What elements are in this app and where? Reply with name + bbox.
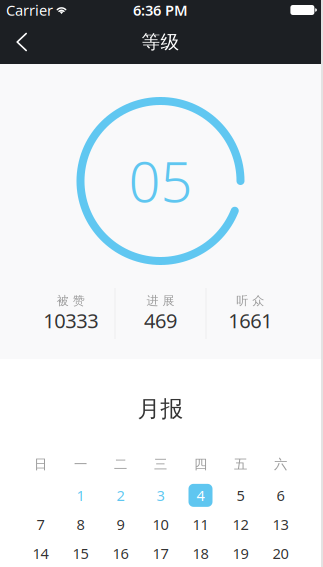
staticText: 9 — [116, 515, 124, 534]
staticText: 一 — [74, 456, 87, 473]
button[interactable]: 10 — [140, 510, 180, 539]
staticText: 11 — [192, 515, 208, 534]
button[interactable]: 20 — [260, 539, 300, 567]
staticText: 12 — [232, 515, 248, 534]
button[interactable]: 14 — [20, 539, 60, 567]
staticText: 五 — [234, 456, 247, 473]
button[interactable]: 7 — [20, 510, 60, 539]
button[interactable]: 4 — [180, 481, 220, 510]
staticText: 二 — [114, 456, 127, 473]
staticText: 月报 — [137, 395, 183, 423]
button[interactable]: 5 — [220, 481, 260, 510]
staticText: 被 赞 — [57, 293, 85, 308]
staticText: 10 — [152, 515, 168, 534]
staticText: 听 众 — [236, 293, 264, 308]
staticText: 18 — [192, 544, 208, 563]
staticText: 16 — [112, 544, 128, 563]
staticText: 6 — [276, 486, 284, 505]
button[interactable]: 8 — [60, 510, 100, 539]
staticText: 20 — [272, 544, 288, 563]
staticText: 3 — [156, 486, 164, 505]
staticText: 日 — [34, 456, 47, 473]
staticText: 六 — [274, 456, 287, 473]
staticText: 10333 — [43, 307, 98, 334]
staticText: 05 — [128, 143, 192, 218]
staticText: 6:36 PM — [133, 0, 188, 20]
button[interactable]: 9 — [100, 510, 140, 539]
button[interactable]: 3 — [140, 481, 180, 510]
staticText: 5 — [236, 486, 244, 505]
button[interactable]: 1 — [60, 481, 100, 510]
staticText: 1 — [76, 486, 84, 505]
staticText: 等级 — [141, 30, 179, 53]
staticText: 7 — [36, 515, 44, 534]
button[interactable]: 11 — [180, 510, 220, 539]
button[interactable]: 15 — [60, 539, 100, 567]
button[interactable]: 13 — [260, 510, 300, 539]
button[interactable]: 6 — [260, 481, 300, 510]
staticText: 17 — [152, 544, 168, 563]
button[interactable]: 18 — [180, 539, 220, 567]
button[interactable]: 19 — [220, 539, 260, 567]
button[interactable]: 2 — [100, 481, 140, 510]
staticText: 1661 — [228, 307, 272, 334]
staticText: 2 — [116, 486, 124, 505]
staticText: 四 — [194, 456, 207, 473]
staticText: 14 — [32, 544, 48, 563]
staticText: 4 — [196, 486, 204, 505]
staticText: 13 — [272, 515, 288, 534]
staticText: 15 — [72, 544, 88, 563]
button[interactable]: 16 — [100, 539, 140, 567]
staticText: Carrier — [6, 0, 53, 20]
button[interactable]: 12 — [220, 510, 260, 539]
staticText: 19 — [232, 544, 248, 563]
button[interactable]: 17 — [140, 539, 180, 567]
staticText: 8 — [76, 515, 84, 534]
staticText: 469 — [144, 307, 177, 334]
staticText: 三 — [154, 456, 167, 473]
button[interactable]: Back — [0, 20, 46, 64]
staticText: 进 展 — [146, 293, 174, 308]
